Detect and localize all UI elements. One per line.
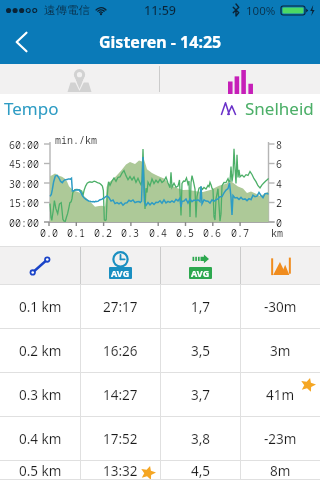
button[interactable]: -30m	[241, 285, 320, 329]
button[interactable]: 1,7	[161, 285, 240, 329]
button[interactable]: 3,7	[161, 373, 240, 417]
button[interactable]: Sort column	[161, 246, 240, 285]
staticText: 3,5	[191, 342, 211, 360]
staticText: 17:52	[103, 430, 138, 448]
button[interactable]: Sort column	[0, 246, 80, 285]
staticText: 14:27	[103, 386, 138, 404]
button[interactable]: 41m	[241, 373, 320, 417]
staticText: min./km	[55, 133, 97, 147]
staticText: 41m	[266, 386, 295, 404]
staticText: 00:00	[9, 216, 39, 230]
staticText: AVG	[191, 267, 210, 279]
staticText: 0	[276, 216, 282, 230]
staticText: 3,7	[191, 386, 211, 404]
staticText: 0.6	[203, 226, 221, 240]
staticText: 16:26	[103, 342, 138, 360]
staticText: 0.4	[149, 226, 167, 240]
staticText: 4	[276, 177, 282, 191]
button[interactable]: 0.2 km	[0, 329, 80, 373]
button[interactable]: Sort column	[241, 246, 320, 285]
button[interactable]: 3m	[241, 329, 320, 373]
staticText: 0.1	[67, 226, 85, 240]
button[interactable]: 16:26	[81, 329, 160, 373]
staticText: 3m	[270, 342, 291, 360]
button[interactable]: 3,5	[161, 329, 240, 373]
staticText: -23m	[264, 430, 297, 448]
staticText: 1,7	[191, 298, 211, 316]
staticText: 45:00	[9, 157, 39, 171]
staticText: 2	[276, 196, 282, 210]
staticText: 0.3	[121, 226, 139, 240]
button[interactable]: 4,5	[161, 461, 240, 480]
staticText: 100%	[246, 3, 276, 19]
staticText: 60:00	[9, 138, 39, 152]
staticText: 0.7	[231, 226, 249, 240]
staticText: 0.1 km	[19, 298, 62, 316]
button[interactable]: -23m	[241, 417, 320, 461]
staticText: 0.4 km	[19, 430, 62, 448]
button[interactable]: 0.5 km	[0, 461, 80, 480]
staticText: 0.5	[176, 226, 194, 240]
staticText: 6	[276, 157, 282, 171]
staticText: Gisteren - 14:25	[99, 31, 222, 53]
button[interactable]: 3,8	[161, 417, 240, 461]
staticText: 4,5	[191, 462, 211, 480]
staticText: 11:59	[144, 2, 177, 19]
staticText: 30:00	[9, 177, 39, 191]
staticText: Snelheid	[245, 97, 314, 120]
staticText: km	[271, 226, 283, 240]
button[interactable]: Sort column	[81, 246, 160, 285]
staticText: 8	[276, 138, 282, 152]
staticText: 27:17	[103, 298, 138, 316]
staticText: 0.3 km	[19, 386, 62, 404]
staticText: AVG	[111, 267, 130, 279]
button[interactable]: 8m	[241, 461, 320, 480]
staticText: 遠傳電信	[44, 3, 90, 17]
button[interactable]: 0.1 km	[0, 285, 80, 329]
staticText: Tempo	[4, 97, 59, 120]
button[interactable]: Chart view	[160, 64, 320, 94]
staticText: 15:00	[9, 196, 39, 210]
staticText: 0.0	[40, 226, 58, 240]
button[interactable]: 13:32	[81, 461, 160, 480]
staticText: 0.5 km	[19, 462, 62, 480]
button[interactable]: 0.4 km	[0, 417, 80, 461]
staticText: 13:32	[103, 462, 138, 480]
staticText: 0.2	[94, 226, 112, 240]
button[interactable]: 14:27	[81, 373, 160, 417]
button[interactable]: Back	[0, 20, 44, 64]
staticText: 0.2 km	[19, 342, 62, 360]
staticText: -30m	[264, 298, 297, 316]
button[interactable]: 0.3 km	[0, 373, 80, 417]
button[interactable]: 27:17	[81, 285, 160, 329]
button[interactable]: Map view	[0, 64, 159, 94]
button[interactable]: 17:52	[81, 417, 160, 461]
staticText: 3,8	[191, 430, 211, 448]
staticText: 8m	[270, 462, 291, 480]
